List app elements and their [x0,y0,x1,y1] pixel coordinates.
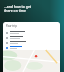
button[interactable] [3,35,60,40]
button[interactable] [3,30,60,35]
button[interactable] [3,45,60,50]
staticText: ...and how to get there on time [4,4,32,13]
staticText: Your trip [6,24,17,28]
button[interactable] [3,40,60,45]
